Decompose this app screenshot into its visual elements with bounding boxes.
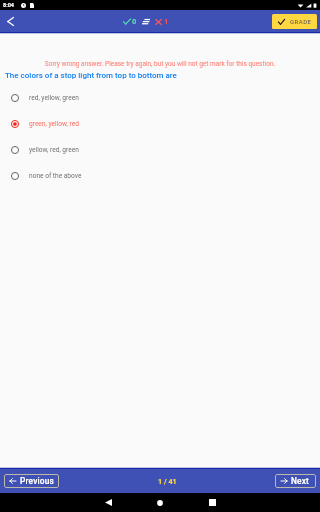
staticText: GRADE	[290, 18, 312, 25]
button[interactable]: Next	[275, 474, 316, 488]
button[interactable]: Home	[134, 493, 186, 512]
staticText: Previous	[20, 476, 54, 486]
staticText: Next	[291, 476, 310, 486]
staticText: 1	[164, 17, 169, 26]
staticText: none of the above	[29, 172, 82, 180]
button[interactable]: GRADE	[272, 14, 317, 29]
button[interactable]: Back	[0, 10, 20, 32]
staticText: The colors of a stop light from top to b…	[5, 71, 177, 80]
staticText: 8:04	[3, 2, 15, 8]
button[interactable]: green, yellow, red	[0, 111, 320, 137]
staticText: 1 / 41	[158, 477, 177, 485]
button[interactable]: Recent apps	[186, 493, 238, 512]
staticText: yellow, red, green	[29, 146, 79, 154]
button[interactable]: Previous	[4, 474, 59, 488]
staticText: Sorry wrong answer. Please try again, bu…	[0, 60, 320, 68]
button[interactable]: red, yellow, green	[0, 85, 320, 111]
button[interactable]: Back	[82, 493, 134, 512]
button[interactable]: none of the above	[0, 163, 320, 189]
staticText: green, yellow, red	[29, 120, 79, 128]
button[interactable]: yellow, red, green	[0, 137, 320, 163]
staticText: 0	[132, 17, 137, 26]
staticText: red, yellow, green	[29, 94, 79, 102]
